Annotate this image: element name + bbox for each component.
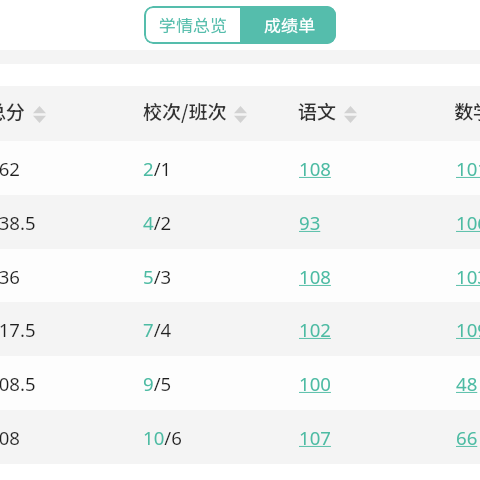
staticText: 508.5 (0, 371, 36, 396)
staticText: 48 (456, 371, 478, 396)
staticText: 数学 (454, 97, 480, 125)
staticText: 108 (299, 156, 331, 181)
staticText: 100 (299, 371, 331, 396)
button[interactable] (0, 249, 480, 303)
button[interactable]: 成绩单 (240, 6, 336, 44)
staticText: 562 (0, 156, 20, 181)
staticText: 106 (456, 210, 480, 235)
staticText: 成绩单 (264, 12, 315, 37)
button[interactable]: 总分 (0, 86, 46, 142)
staticText: 7/4 (143, 317, 172, 342)
staticText: 4/2 (143, 210, 172, 235)
staticText: 103 (456, 264, 480, 289)
staticText: 536 (0, 264, 20, 289)
button[interactable]: 学情总览 (144, 6, 240, 44)
staticText: 总分 (0, 97, 26, 125)
staticText: 66 (456, 425, 478, 450)
staticText: 102 (299, 317, 331, 342)
button[interactable] (0, 410, 480, 464)
button[interactable] (0, 141, 480, 195)
staticText: 2/1 (143, 156, 172, 181)
staticText: 538.5 (0, 210, 36, 235)
staticText: 语文 (298, 97, 337, 125)
button[interactable] (0, 195, 480, 249)
staticText: 10/6 (143, 425, 182, 450)
button[interactable]: 语文 (298, 86, 357, 142)
staticText: 93 (299, 210, 321, 235)
staticText: 101 (456, 156, 480, 181)
staticText: 108 (299, 264, 331, 289)
staticText: 9/5 (143, 371, 172, 396)
staticText: 107 (299, 425, 331, 450)
staticText: 508 (0, 425, 20, 450)
button[interactable]: 数学 (454, 86, 480, 142)
staticText: 109 (456, 317, 480, 342)
button[interactable]: 校次/班次 (143, 86, 247, 142)
button[interactable] (0, 356, 480, 410)
button[interactable] (0, 302, 480, 356)
staticText: 5/3 (143, 264, 172, 289)
staticText: 517.5 (0, 317, 36, 342)
staticText: 学情总览 (159, 12, 227, 37)
staticText: 校次/班次 (143, 97, 227, 125)
